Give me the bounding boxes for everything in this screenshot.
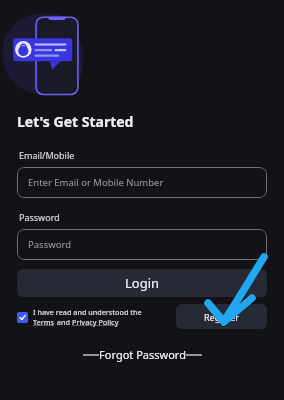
staticText: I have read and understood the <box>33 307 142 317</box>
button[interactable]: Forgot Password <box>17 347 267 362</box>
button[interactable]: Register <box>176 304 267 329</box>
staticText: Login <box>125 274 160 292</box>
staticText: Privacy Policy <box>72 317 119 327</box>
staticText: Password <box>19 211 60 223</box>
staticText: Enter Email or Mobile Number <box>28 176 164 189</box>
button[interactable]: I have read and understood the <box>17 307 176 327</box>
button[interactable]: Login <box>17 269 267 297</box>
button[interactable]: Enter Email or Mobile Number <box>17 167 267 198</box>
staticText: Terms <box>33 317 55 327</box>
staticText: Let's Get Started <box>17 112 134 131</box>
staticText: Register <box>204 311 239 323</box>
other: Annotation arrow pointing to Register <box>0 0 284 400</box>
staticText: Email/Mobile <box>19 149 75 161</box>
staticText: Forgot Password <box>99 347 186 362</box>
staticText: and <box>55 317 72 327</box>
button[interactable]: Password <box>17 229 267 260</box>
staticText: Password <box>28 238 71 251</box>
